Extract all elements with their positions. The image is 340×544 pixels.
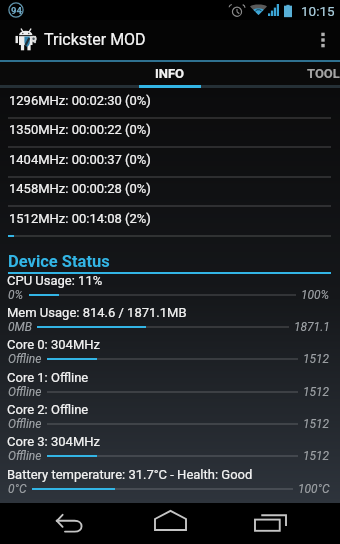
staticText: 1458MHz: 00:00:28 (0%) xyxy=(9,181,151,196)
staticText: Battery temperature: 31.7°C - Health: Go… xyxy=(7,467,253,482)
staticText: 1404MHz: 00:00:37 (0%) xyxy=(9,152,151,167)
staticText: Core 0: 304MHz xyxy=(7,337,100,352)
staticText: Core 3: 304MHz xyxy=(7,434,100,449)
staticText: INFO xyxy=(155,66,185,81)
staticText: Mem Usage: 814.6 / 1871.1MB xyxy=(7,305,187,320)
staticText: Trickster MOD xyxy=(44,30,146,49)
staticText: Offline xyxy=(8,385,42,399)
button[interactable]: Mem Usage: 814.6 / 1871.1MB xyxy=(0,305,340,337)
button[interactable]: Core 1: Offline xyxy=(0,370,340,402)
staticText: 1512MHz: 00:14:08 (2%) xyxy=(9,211,151,226)
button[interactable]: 1404MHz: 00:00:37 (0%) xyxy=(0,152,340,182)
staticText: 10:15 xyxy=(301,3,335,19)
staticText: Offline xyxy=(8,417,42,431)
staticText: Core 2: Offline xyxy=(7,402,89,417)
button[interactable]: INFO xyxy=(139,62,201,85)
staticText: 1350MHz: 00:00:22 (0%) xyxy=(9,122,151,137)
button[interactable]: 1296MHz: 00:02:30 (0%) xyxy=(0,93,340,123)
staticText: Offline xyxy=(8,449,42,463)
button[interactable]: Back xyxy=(37,503,105,544)
staticText: 1296MHz: 00:02:30 (0%) xyxy=(9,93,151,108)
staticText: 1512 xyxy=(303,352,330,366)
staticText: 94 xyxy=(11,5,22,16)
staticText: Device Status xyxy=(8,252,110,271)
button[interactable]: Core 2: Offline xyxy=(0,402,340,434)
staticText: Core 1: Offline xyxy=(7,370,89,385)
button[interactable]: 1512MHz: 00:14:08 (2%) xyxy=(0,211,340,241)
button[interactable]: Recent apps xyxy=(236,503,304,544)
staticText: 0% xyxy=(8,288,24,302)
staticText: 0MB xyxy=(8,320,32,334)
staticText: 1871.1 xyxy=(294,320,330,334)
button[interactable]: Trickster MOD xyxy=(0,20,340,60)
button[interactable]: 1458MHz: 00:00:28 (0%) xyxy=(0,181,340,211)
staticText: 0°C xyxy=(8,482,27,496)
button[interactable]: Core 3: 304MHz xyxy=(0,434,340,466)
staticText: 1512 xyxy=(303,385,330,399)
staticText: Offline xyxy=(8,352,42,366)
staticText: 100°C xyxy=(298,482,330,496)
staticText: 100% xyxy=(301,288,330,302)
button[interactable]: Core 0: 304MHz xyxy=(0,337,340,369)
button[interactable]: 1350MHz: 00:00:22 (0%) xyxy=(0,122,340,152)
staticText: 1512 xyxy=(303,449,330,463)
staticText: 1512 xyxy=(303,417,330,431)
staticText: TOOL xyxy=(307,66,340,81)
button[interactable]: TOOL xyxy=(201,62,340,85)
button[interactable]: Battery temperature: 31.7°C - Health: Go… xyxy=(0,467,340,499)
staticText: CPU Usage: 11% xyxy=(7,273,103,288)
button[interactable]: CPU Usage: 11% xyxy=(0,273,340,305)
button[interactable]: More options xyxy=(306,20,340,60)
button[interactable]: Home xyxy=(136,503,204,544)
